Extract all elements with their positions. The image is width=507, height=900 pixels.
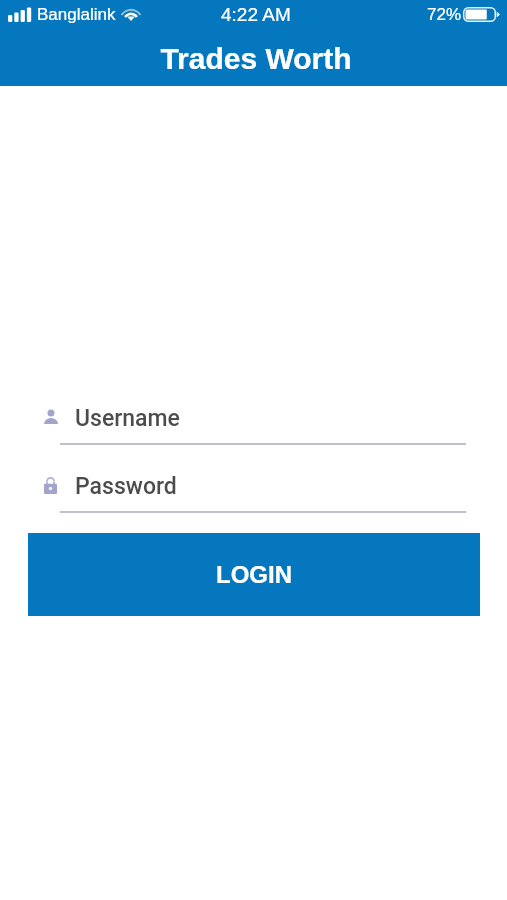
staticText: 72%	[427, 5, 462, 24]
other: Password	[44, 477, 57, 494]
button[interactable]: Password	[0, 457, 507, 515]
other: Username	[44, 409, 58, 427]
button[interactable]: LOGIN	[28, 533, 480, 616]
button[interactable]: Username	[0, 389, 507, 447]
staticText: Username	[75, 405, 180, 432]
staticText: LOGIN	[216, 561, 292, 588]
other: Battery 72 percent	[463, 7, 500, 22]
staticText: 4:22 AM	[221, 4, 291, 25]
staticText: Password	[75, 473, 177, 500]
other: Cellular signal	[8, 7, 31, 23]
staticText: Banglalink	[37, 5, 116, 24]
other: Wi-Fi	[122, 8, 140, 21]
staticText: Trades Worth	[160, 42, 352, 76]
